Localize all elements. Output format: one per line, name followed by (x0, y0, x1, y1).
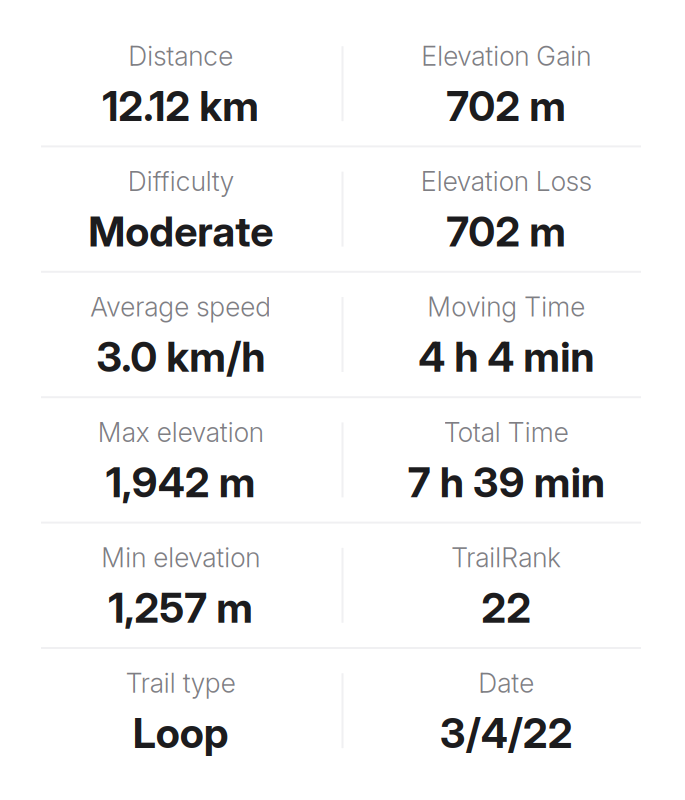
button[interactable]: Trail type (18, 649, 343, 772)
staticText: Average speed (90, 291, 271, 323)
staticText: Moderate (88, 206, 273, 256)
staticText: Elevation Loss (421, 165, 592, 198)
staticText: 4 h 4 min (418, 332, 594, 382)
staticText: 22 (481, 583, 531, 633)
staticText: 12.12 km (102, 81, 259, 131)
staticText: Min elevation (101, 541, 260, 574)
staticText: Max elevation (98, 416, 264, 448)
staticText: 702 m (446, 206, 566, 256)
button[interactable]: Total Time (343, 398, 669, 522)
staticText: 1,942 m (106, 457, 256, 507)
button[interactable]: Max elevation (18, 398, 343, 522)
button[interactable]: Min elevation (18, 524, 343, 647)
staticText: Difficulty (128, 165, 234, 198)
button[interactable]: Moving Time (343, 273, 669, 396)
staticText: 7 h 39 min (408, 457, 605, 507)
staticText: Distance (128, 40, 233, 72)
staticText: 1,257 m (108, 583, 253, 633)
staticText: 3/4/22 (440, 708, 573, 758)
staticText: Total Time (444, 416, 569, 448)
staticText: Trail type (126, 667, 236, 699)
staticText: TrailRank (451, 541, 561, 574)
button[interactable]: Average speed (18, 273, 343, 396)
staticText: 3.0 km/h (96, 332, 265, 382)
button[interactable]: Date (343, 649, 669, 772)
staticText: Loop (133, 708, 229, 758)
button[interactable]: TrailRank (343, 524, 669, 647)
button[interactable]: Elevation Loss (343, 147, 669, 271)
staticText: Moving Time (427, 291, 585, 323)
button[interactable]: Elevation Gain (343, 22, 669, 145)
staticText: 702 m (446, 81, 566, 131)
staticText: Elevation Gain (421, 40, 591, 72)
button[interactable]: Difficulty (18, 147, 343, 271)
button[interactable]: Distance (18, 22, 343, 145)
staticText: Date (478, 667, 534, 699)
